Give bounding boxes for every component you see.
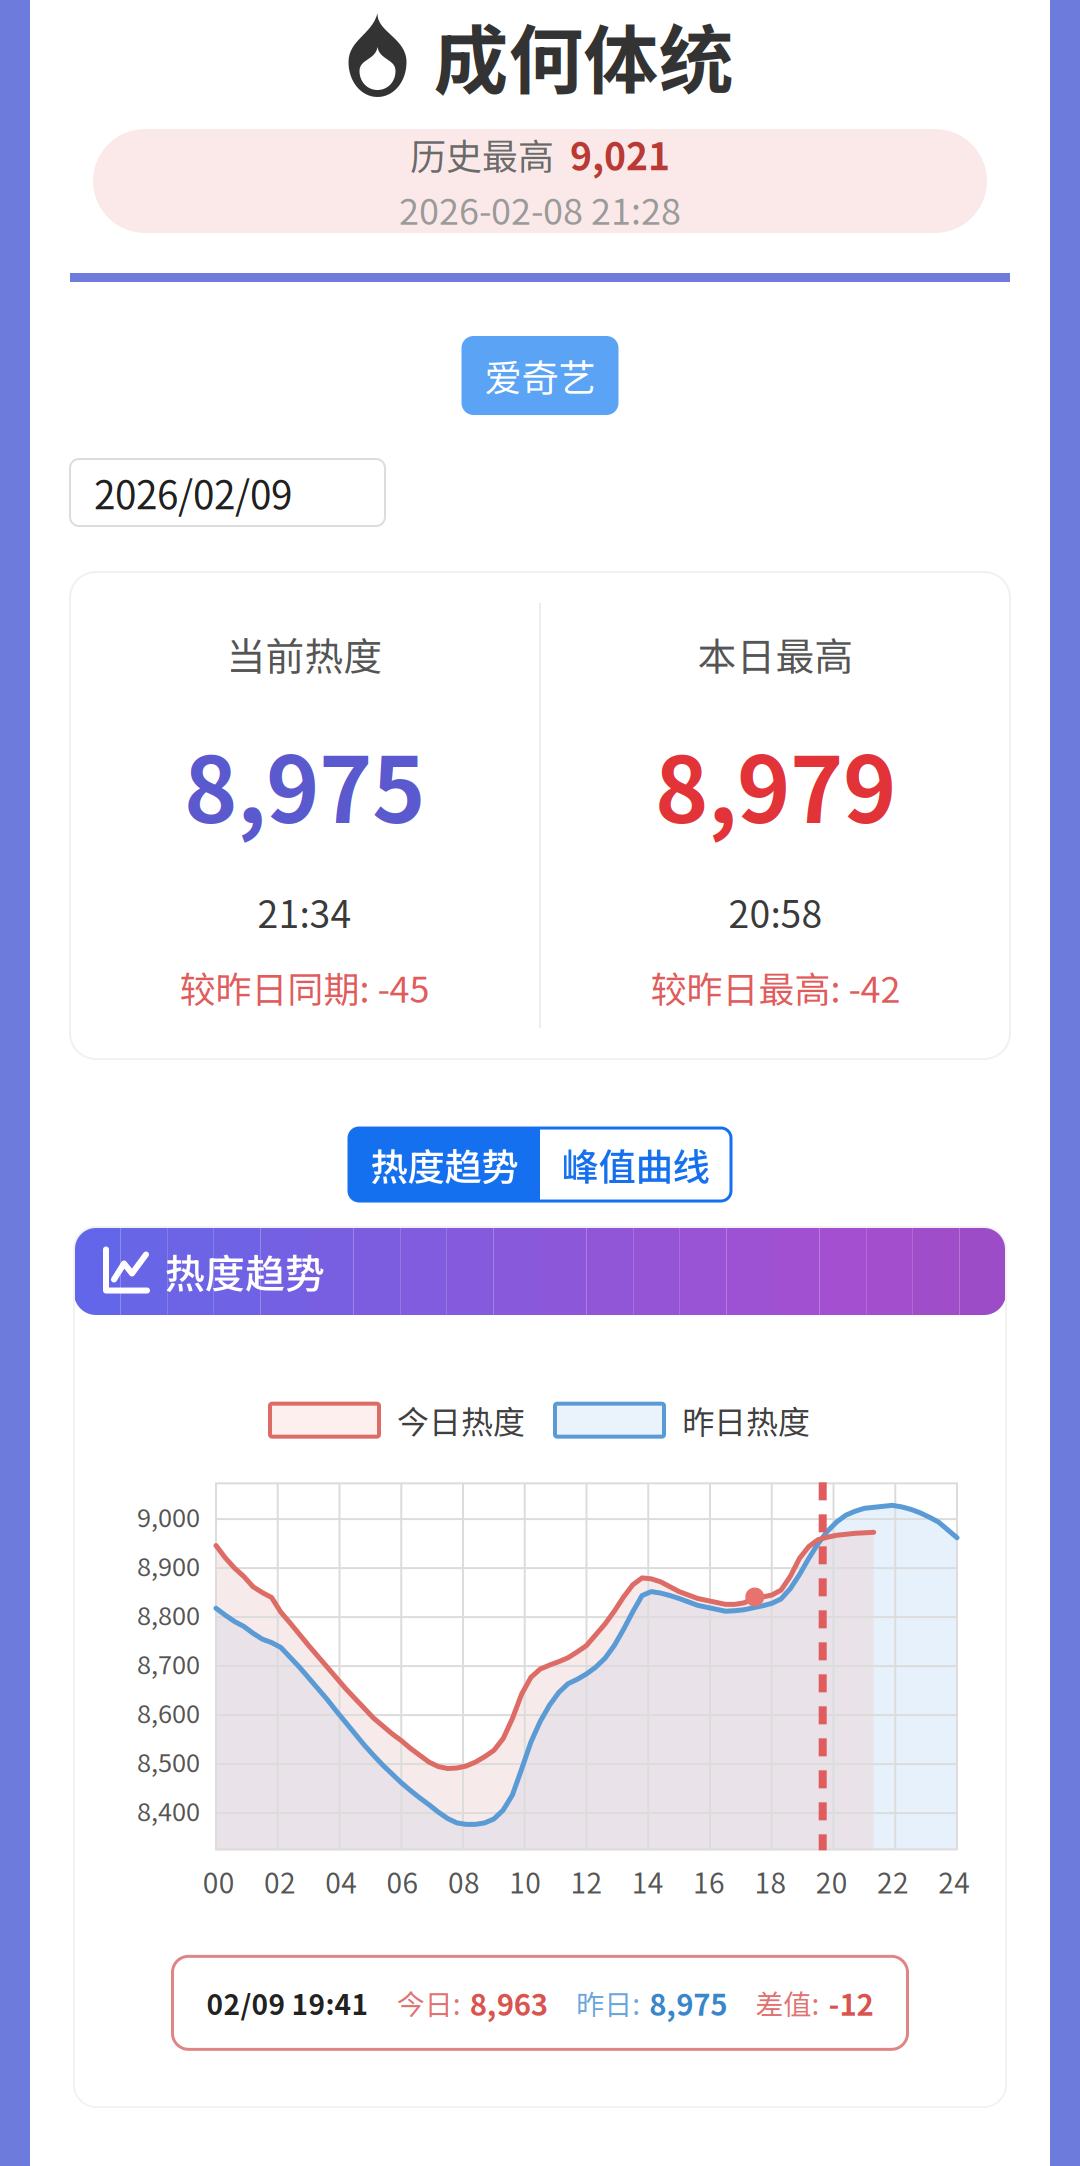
staticText: 10 bbox=[509, 1861, 541, 1902]
staticText: 热度趋势 bbox=[165, 1242, 325, 1300]
staticText: 8,963 bbox=[470, 1982, 548, 2024]
staticText: 昨日热度 bbox=[682, 1397, 810, 1443]
staticText: 8,600 bbox=[137, 1694, 200, 1730]
staticText: 2026-02-08 21:28 bbox=[399, 183, 681, 235]
staticText: 爱奇艺 bbox=[484, 348, 595, 403]
button[interactable]: 2026/02/09 bbox=[70, 459, 385, 526]
staticText: 04 bbox=[325, 1861, 357, 1902]
staticText: 较昨日同期: -45 bbox=[179, 961, 429, 1013]
staticText: 16 bbox=[693, 1861, 725, 1902]
staticText: 02 bbox=[264, 1861, 296, 1902]
staticText: 24 bbox=[938, 1861, 970, 1902]
staticText: 12 bbox=[570, 1861, 602, 1902]
staticText: 本日最高 bbox=[697, 626, 853, 682]
button[interactable]: 热度趋势 bbox=[349, 1128, 540, 1201]
staticText: 当前热度 bbox=[226, 626, 382, 682]
staticText: 22 bbox=[877, 1861, 909, 1902]
staticText: 9,021 bbox=[570, 127, 670, 181]
staticText: 8,500 bbox=[137, 1743, 200, 1779]
staticText: 历史最高 bbox=[410, 128, 554, 180]
staticText: 今日热度 bbox=[397, 1397, 525, 1443]
staticText: 较昨日最高: -42 bbox=[650, 961, 900, 1013]
staticText: 8,975 bbox=[184, 718, 425, 849]
staticText: 差值: bbox=[755, 1983, 819, 2023]
staticText: 成何体统 bbox=[433, 1, 733, 109]
staticText: 00 bbox=[203, 1861, 235, 1902]
staticText: 8,975 bbox=[649, 1982, 727, 2024]
staticText: 2026/02/09 bbox=[94, 464, 292, 520]
staticText: -12 bbox=[828, 1982, 873, 2024]
staticText: 14 bbox=[632, 1861, 664, 1902]
staticText: 8,979 bbox=[655, 718, 896, 849]
staticText: 20 bbox=[816, 1861, 848, 1902]
staticText: 昨日: bbox=[576, 1983, 640, 2023]
button[interactable]: 爱奇艺 bbox=[461, 336, 618, 415]
staticText: 峰值曲线 bbox=[561, 1137, 709, 1192]
staticText: 08 bbox=[448, 1861, 480, 1902]
staticText: 02/09 19:41 bbox=[206, 1983, 368, 2023]
staticText: 8,400 bbox=[137, 1792, 200, 1828]
staticText: 8,900 bbox=[137, 1547, 200, 1583]
staticText: 21:34 bbox=[257, 885, 351, 939]
staticText: 18 bbox=[754, 1861, 786, 1902]
staticText: 热度趋势 bbox=[370, 1137, 518, 1192]
staticText: 20:58 bbox=[728, 885, 822, 939]
staticText: 8,700 bbox=[137, 1645, 200, 1681]
staticText: 9,000 bbox=[137, 1498, 200, 1534]
staticText: 06 bbox=[387, 1861, 419, 1902]
staticText: 今日: bbox=[397, 1983, 461, 2023]
button[interactable]: 峰值曲线 bbox=[540, 1128, 731, 1201]
staticText: 8,800 bbox=[137, 1596, 200, 1632]
